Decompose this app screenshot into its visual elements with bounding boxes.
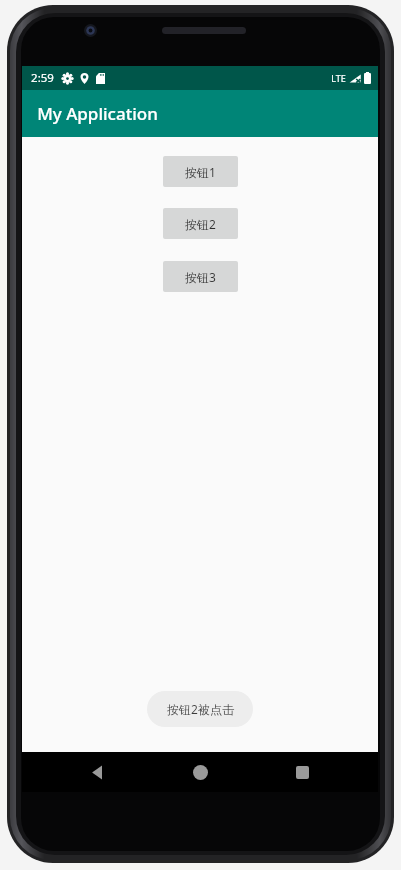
staticText: My Application xyxy=(37,102,158,125)
staticText: 按钮3 xyxy=(185,269,216,285)
staticText: LTE xyxy=(331,72,346,84)
button[interactable]: Home xyxy=(193,765,208,780)
staticText: 按钮2被点击 xyxy=(167,701,234,717)
staticText: 按钮2 xyxy=(185,216,216,232)
staticText: 按钮1 xyxy=(185,164,216,180)
button[interactable]: Back xyxy=(90,765,105,780)
button[interactable]: 按钮2 xyxy=(163,208,238,239)
button[interactable]: 按钮1 xyxy=(163,156,238,187)
staticText: 2:59 xyxy=(31,70,54,86)
button[interactable]: Recents xyxy=(296,766,309,779)
button[interactable]: 按钮2被点击 xyxy=(147,691,253,727)
button[interactable]: 按钮3 xyxy=(163,261,238,292)
